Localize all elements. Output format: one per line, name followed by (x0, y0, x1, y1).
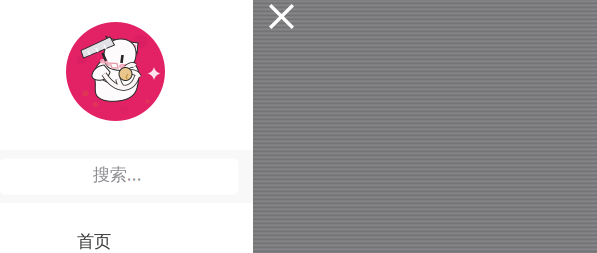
staticText: 搜索... (93, 162, 142, 185)
button[interactable]: Profile picture (0, 0, 165, 121)
button[interactable]: 首页 (0, 0, 253, 253)
button[interactable]: 搜索... (0, 0, 253, 203)
staticText: 首页 (77, 231, 111, 252)
button[interactable]: Close menu (253, 0, 294, 29)
